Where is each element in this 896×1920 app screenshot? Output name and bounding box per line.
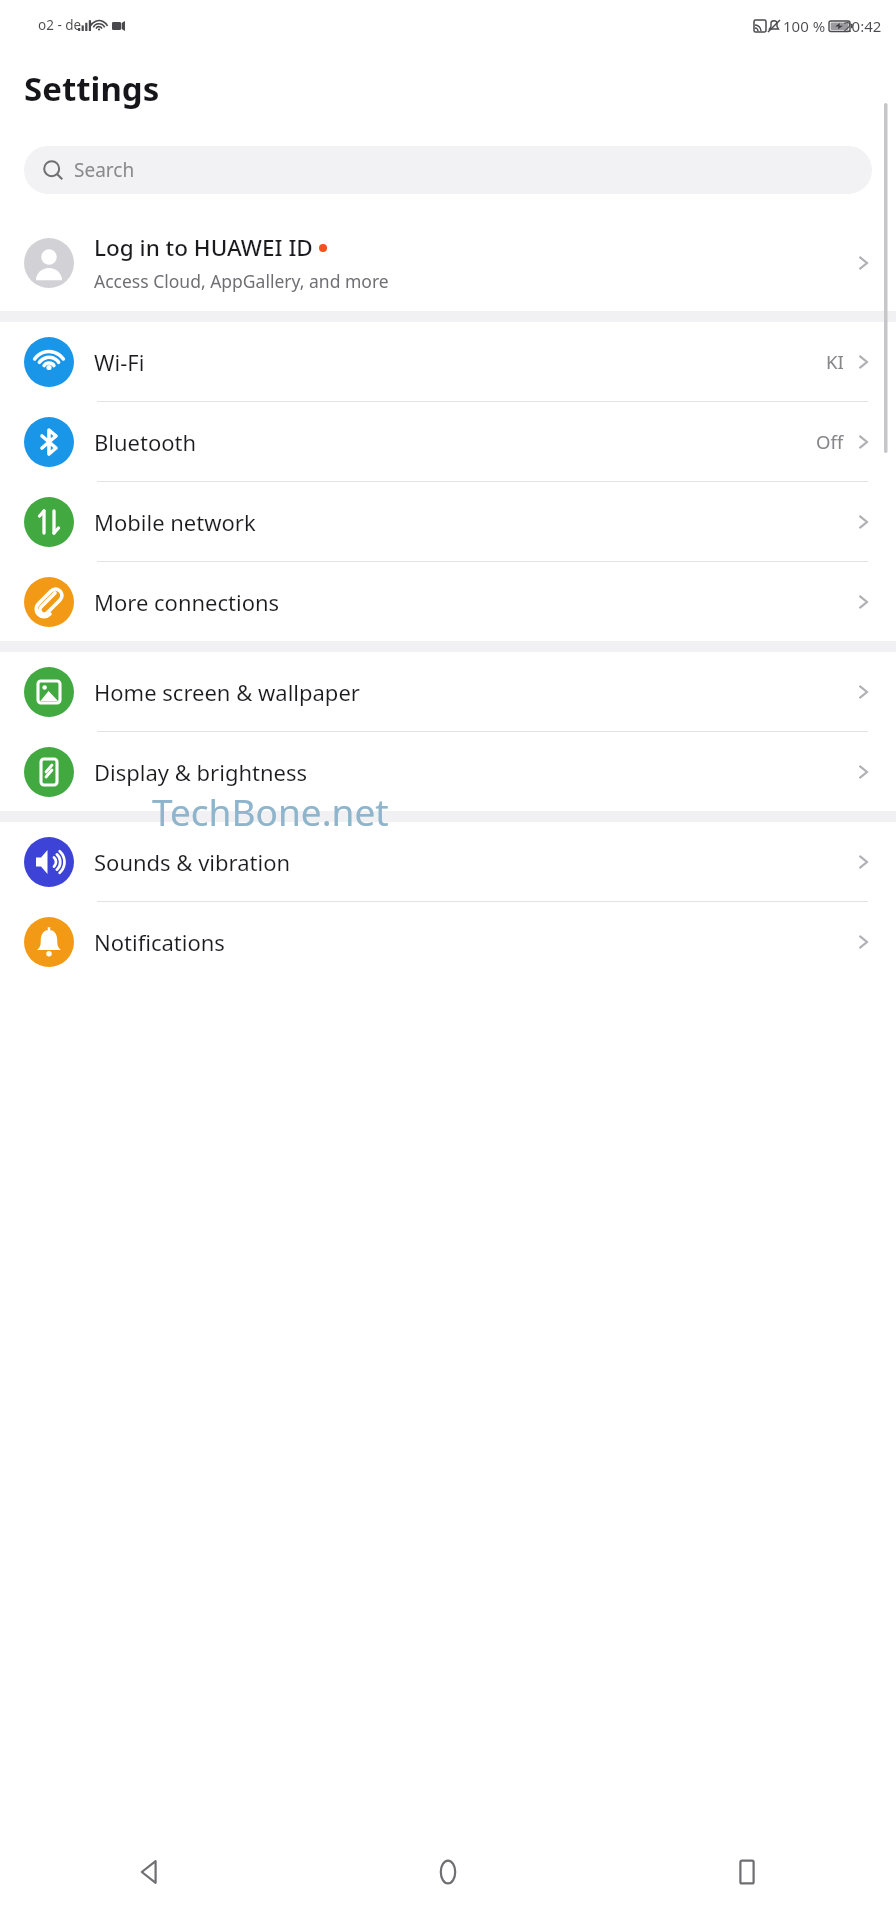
other: Open	[852, 761, 874, 783]
other: Open	[852, 681, 874, 703]
other: Open	[852, 431, 874, 453]
staticText: Settings	[24, 66, 160, 111]
button[interactable]: Back	[0, 1824, 298, 1920]
staticText: More connections	[94, 587, 852, 617]
staticText: Home screen & wallpaper	[94, 677, 852, 707]
other: Open	[852, 252, 874, 274]
staticText: Access Cloud, AppGallery, and more	[94, 269, 389, 293]
staticText: 100 %	[783, 16, 826, 36]
staticText: Log in to HUAWEI ID	[94, 232, 313, 263]
button[interactable]: Bluetooth	[0, 402, 896, 482]
staticText: Wi-Fi	[94, 347, 826, 377]
other: Open	[852, 351, 874, 373]
button[interactable]: More connections	[0, 562, 896, 641]
other: Open	[852, 931, 874, 953]
staticText: Mobile network	[94, 507, 852, 537]
staticText: KI	[826, 349, 844, 374]
staticText: Notifications	[94, 927, 852, 957]
staticText: Search	[74, 157, 135, 183]
button[interactable]: Wi-Fi	[0, 322, 896, 402]
button[interactable]: Home	[298, 1824, 597, 1920]
staticText: Off	[816, 429, 844, 454]
staticText: 20:42	[843, 16, 882, 36]
staticText: o2 - de	[38, 16, 82, 34]
button[interactable]: Log in to HUAWEI ID	[0, 214, 896, 311]
button[interactable]: Display & brightness	[0, 732, 896, 811]
button[interactable]: Recents	[597, 1824, 896, 1920]
other: Open	[852, 511, 874, 533]
staticText: Bluetooth	[94, 427, 816, 457]
button[interactable]: Sounds & vibration	[0, 822, 896, 902]
staticText: Sounds & vibration	[94, 847, 852, 877]
staticText: TechBone.net	[152, 786, 389, 836]
button[interactable]: Home screen & wallpaper	[0, 652, 896, 732]
other: Open	[852, 591, 874, 613]
other: Open	[852, 851, 874, 873]
staticText: Display & brightness	[94, 757, 852, 787]
button[interactable]: Mobile network	[0, 482, 896, 562]
button[interactable]: Search	[24, 146, 872, 194]
button[interactable]: Notifications	[0, 902, 896, 981]
